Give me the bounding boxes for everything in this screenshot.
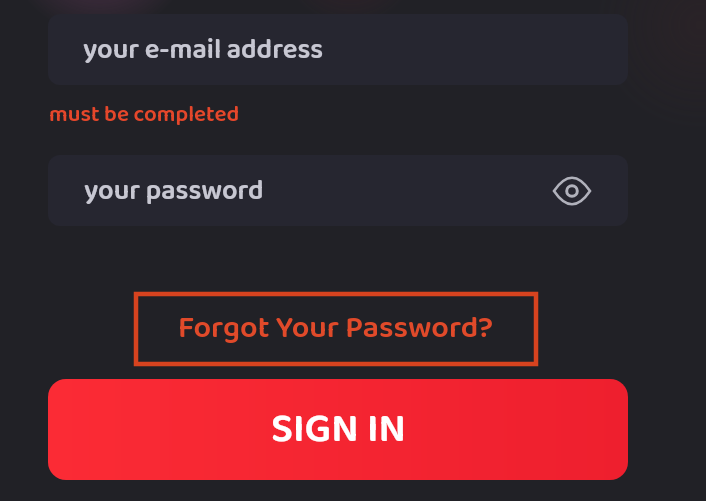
staticText: your e-mail address bbox=[83, 28, 324, 72]
button[interactable]: Forgot Your Password? bbox=[136, 294, 536, 364]
staticText: your password bbox=[84, 169, 264, 213]
button[interactable]: SIGN IN bbox=[48, 379, 628, 480]
button[interactable]: your e-mail address bbox=[48, 14, 628, 85]
button[interactable] bbox=[552, 175, 592, 207]
staticText: SIGN IN bbox=[271, 397, 406, 463]
staticText: Forgot Your Password? bbox=[178, 304, 494, 354]
button[interactable]: your password bbox=[48, 155, 628, 226]
staticText: must be completed bbox=[49, 97, 240, 133]
